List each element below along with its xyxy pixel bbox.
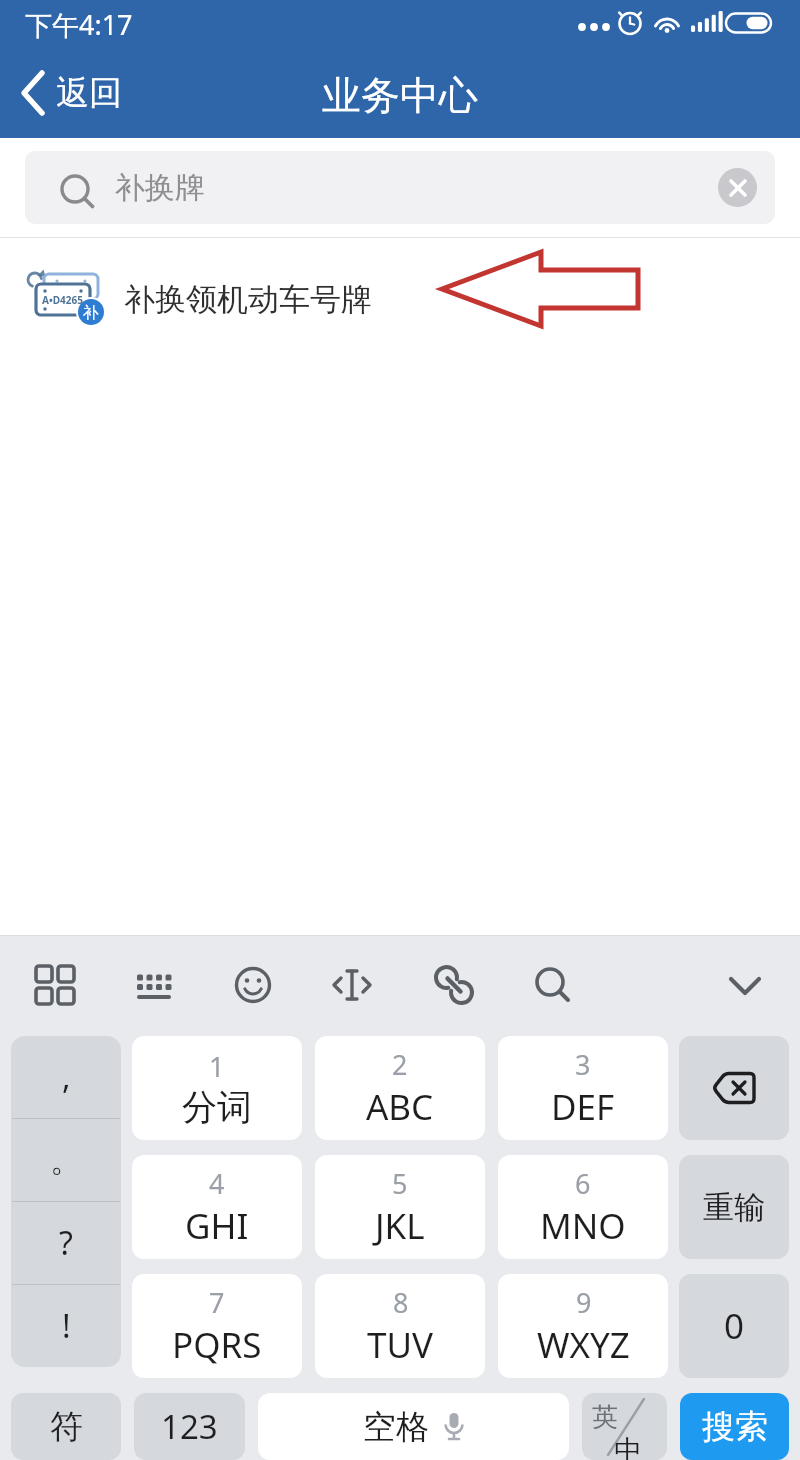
staticText: 补 (83, 303, 99, 323)
button[interactable]: 。 (11, 1119, 121, 1201)
staticText: 中 (614, 1433, 642, 1460)
button[interactable] (679, 1036, 789, 1140)
staticText: 下午4:17 (25, 6, 133, 43)
button[interactable] (124, 955, 184, 1015)
button[interactable]: 4 (132, 1155, 302, 1259)
staticText: 补换领机动车号牌 (124, 280, 372, 319)
button[interactable]: 返回 (20, 71, 122, 115)
staticText: JKL (375, 1202, 425, 1250)
button[interactable]: ? (11, 1202, 121, 1284)
staticText: 123 (161, 1404, 218, 1449)
staticText: 返回 (56, 72, 122, 114)
button[interactable] (715, 955, 775, 1015)
staticText: ? (59, 1221, 73, 1265)
staticText: 英 (592, 1401, 618, 1434)
staticText: 3 (575, 1046, 591, 1083)
staticText: PQRS (172, 1321, 262, 1369)
button[interactable]: 重输 (679, 1155, 789, 1259)
button[interactable]: , (11, 1036, 121, 1118)
button[interactable] (223, 955, 283, 1015)
button[interactable] (25, 955, 85, 1015)
button[interactable]: A•D4265 (0, 238, 800, 360)
staticText: WXYZ (537, 1321, 630, 1369)
staticText: 5 (392, 1165, 408, 1202)
staticText: , (62, 1055, 71, 1099)
button[interactable]: 搜索 (680, 1393, 789, 1460)
staticText: 8 (393, 1284, 409, 1321)
staticText: 业务中心 (322, 71, 478, 120)
staticText: 搜索 (702, 1406, 768, 1448)
button[interactable]: 7 (132, 1274, 302, 1378)
staticText: 1 (209, 1048, 225, 1085)
button[interactable]: ! (11, 1285, 121, 1367)
staticText: 重输 (703, 1188, 765, 1227)
staticText: 分词 (182, 1085, 252, 1129)
button[interactable]: 补换牌 (25, 151, 775, 224)
staticText: 9 (576, 1284, 592, 1321)
button[interactable]: 5 (315, 1155, 485, 1259)
button[interactable]: 0 (679, 1274, 789, 1378)
button[interactable]: 3 (498, 1036, 668, 1140)
staticText: A•D4265 (42, 293, 83, 307)
staticText: 4 (209, 1165, 225, 1202)
button[interactable]: 8 (315, 1274, 485, 1378)
button[interactable]: 9 (498, 1274, 668, 1378)
staticText: DEF (551, 1083, 615, 1131)
staticText: ABC (366, 1083, 434, 1131)
staticText: ! (62, 1304, 71, 1348)
button[interactable] (523, 955, 583, 1015)
button[interactable] (718, 168, 757, 207)
staticText: 7 (209, 1284, 225, 1321)
staticText: 2 (392, 1046, 408, 1083)
button[interactable] (424, 955, 484, 1015)
button[interactable]: 符 (11, 1393, 121, 1460)
staticText: 。 (50, 1140, 82, 1180)
staticText: MNO (540, 1202, 626, 1250)
staticText: 0 (724, 1302, 745, 1350)
button[interactable]: 123 (134, 1393, 245, 1460)
button[interactable]: 1 (132, 1036, 302, 1140)
button[interactable]: 空格 (258, 1393, 569, 1460)
button[interactable]: 2 (315, 1036, 485, 1140)
staticText: 补换牌 (115, 169, 205, 207)
staticText: GHI (185, 1202, 249, 1250)
staticText: 符 (50, 1406, 83, 1448)
staticText: 6 (575, 1165, 591, 1202)
button[interactable]: 英 (582, 1393, 667, 1460)
staticText: TUV (367, 1321, 434, 1369)
button[interactable] (322, 955, 382, 1015)
button[interactable]: 6 (498, 1155, 668, 1259)
staticText: 空格 (363, 1406, 429, 1448)
